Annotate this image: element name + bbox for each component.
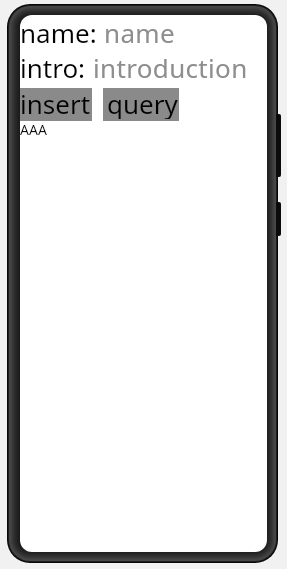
button[interactable]: introduction bbox=[93, 50, 267, 81]
staticText: name bbox=[104, 15, 175, 46]
button[interactable]: name bbox=[104, 15, 267, 46]
staticText: intro: bbox=[20, 50, 86, 85]
staticText: query bbox=[107, 86, 178, 119]
button[interactable]: Power bbox=[276, 202, 281, 236]
staticText: introduction bbox=[93, 50, 248, 81]
button[interactable]: query bbox=[103, 88, 179, 121]
staticText: insert bbox=[20, 86, 91, 119]
staticText: name: bbox=[20, 15, 97, 50]
button[interactable]: insert bbox=[20, 88, 92, 121]
button[interactable]: Volume bbox=[276, 114, 281, 177]
staticText: AAA bbox=[20, 120, 47, 139]
